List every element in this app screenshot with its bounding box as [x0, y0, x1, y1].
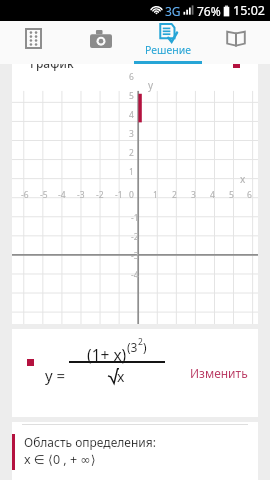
staticText: ) [143, 339, 147, 355]
staticText: y [148, 78, 154, 92]
staticText: 6 [247, 189, 252, 201]
staticText: x ∈ ⟨0 , + ∞⟩ [24, 451, 96, 468]
staticText: Решение [145, 43, 191, 57]
staticText: -3 [131, 250, 139, 262]
staticText: x [240, 172, 246, 186]
button[interactable]: Book [202, 21, 270, 64]
staticText: 4 [210, 189, 215, 201]
staticText: 1 [153, 189, 158, 201]
staticText: y = [45, 365, 66, 385]
staticText: -2 [96, 189, 104, 201]
staticText: 15:02 [233, 2, 265, 19]
staticText: 76% [197, 3, 221, 19]
button[interactable]: Keypad [0, 21, 67, 64]
staticText: График [30, 55, 74, 71]
staticText: -2 [131, 231, 139, 243]
staticText: -1 [115, 189, 123, 201]
staticText: 3G [165, 3, 181, 19]
staticText: Изменить [190, 365, 248, 381]
staticText: 6 [129, 71, 134, 83]
staticText: -3 [77, 189, 85, 201]
staticText: x [117, 367, 125, 386]
button[interactable]: Camera [67, 21, 134, 64]
button[interactable]: Решение [134, 21, 202, 64]
staticText: -5 [40, 189, 48, 201]
staticText: (1+ x) [87, 344, 127, 365]
staticText: 2 [129, 147, 134, 159]
staticText: 3 [191, 189, 196, 201]
staticText: -4 [58, 189, 66, 201]
staticText: -1 [131, 212, 139, 224]
staticText: 3 [129, 128, 134, 140]
staticText: 5 [229, 189, 234, 201]
staticText: 2 [172, 189, 177, 201]
staticText: 4 [129, 109, 134, 121]
staticText: Область определения: [24, 434, 156, 450]
staticText: 0 [129, 189, 134, 201]
button[interactable]: График [12, 21, 258, 72]
staticText: -6 [21, 189, 29, 201]
staticText: 2 [138, 336, 143, 348]
staticText: -4 [131, 269, 139, 281]
staticText: 5 [129, 90, 134, 102]
button[interactable]: Изменить [190, 365, 248, 381]
staticText: 1 [129, 166, 134, 178]
staticText: (3 [127, 339, 138, 355]
